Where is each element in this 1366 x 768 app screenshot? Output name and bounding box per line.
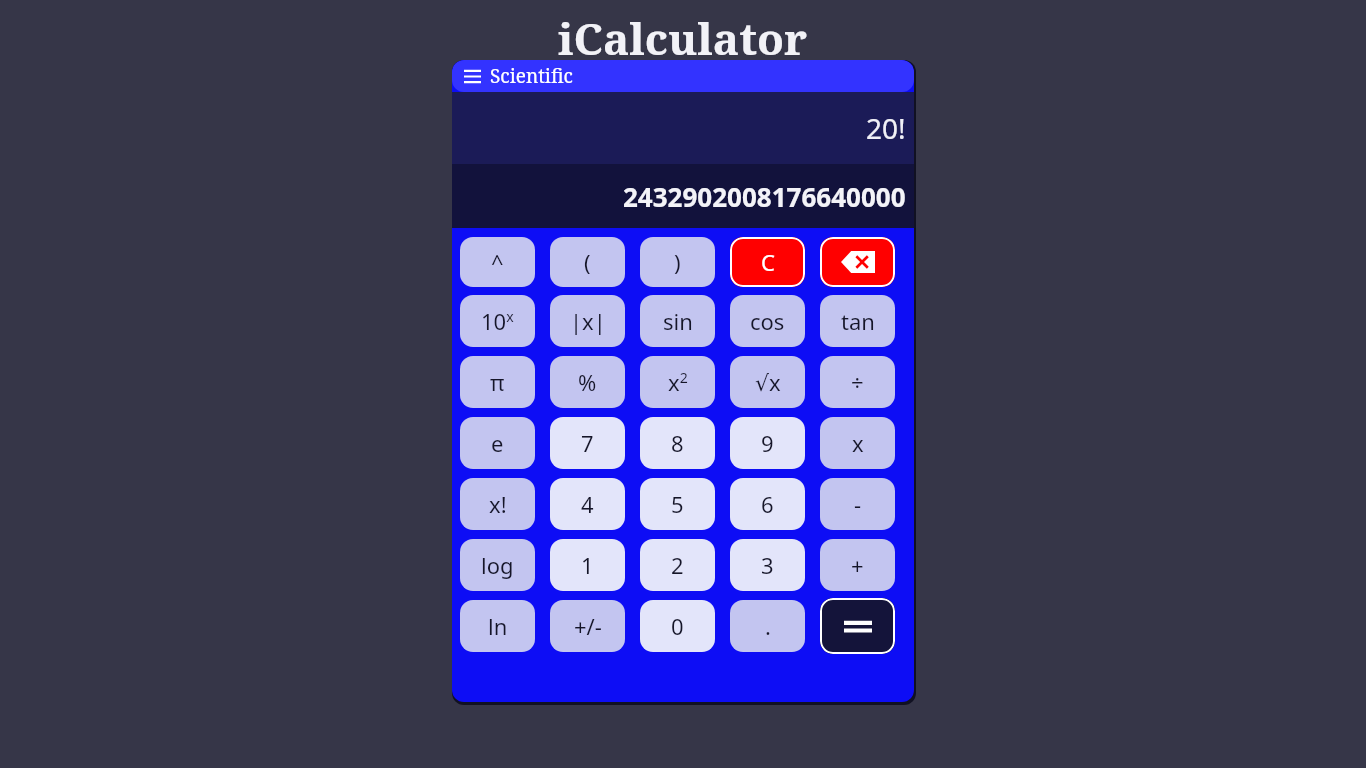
staticText: x2 bbox=[668, 367, 688, 397]
staticText: 2 bbox=[671, 550, 684, 580]
button[interactable]: cos bbox=[730, 295, 805, 347]
button[interactable]: x bbox=[820, 417, 895, 469]
staticText: ÷ bbox=[851, 367, 864, 397]
button[interactable]: 3 bbox=[730, 539, 805, 591]
button[interactable]: ln bbox=[460, 600, 535, 652]
button[interactable]: 5 bbox=[640, 478, 715, 530]
button[interactable]: 0 bbox=[640, 600, 715, 652]
staticText: π bbox=[490, 367, 505, 397]
button[interactable]: ) bbox=[640, 237, 715, 287]
button[interactable]: . bbox=[730, 600, 805, 652]
button[interactable]: Backspace bbox=[820, 237, 895, 287]
staticText: 4 bbox=[581, 489, 594, 519]
staticText: log bbox=[481, 550, 514, 580]
button[interactable]: sin bbox=[640, 295, 715, 347]
staticText: . bbox=[765, 611, 771, 641]
button[interactable]: 9 bbox=[730, 417, 805, 469]
button[interactable]: 7 bbox=[550, 417, 625, 469]
button[interactable]: % bbox=[550, 356, 625, 408]
staticText: 10x bbox=[481, 306, 514, 336]
staticText: + bbox=[851, 550, 864, 580]
staticText: iCalculator bbox=[558, 8, 808, 68]
staticText: 9 bbox=[761, 428, 774, 458]
button[interactable]: 4 bbox=[550, 478, 625, 530]
staticText: 8 bbox=[671, 428, 684, 458]
staticText: 1 bbox=[581, 550, 594, 580]
staticText: sin bbox=[663, 306, 693, 336]
staticText: Scientific bbox=[490, 63, 573, 89]
button[interactable] bbox=[820, 598, 895, 654]
button[interactable]: 10x bbox=[460, 295, 535, 347]
staticText: √x bbox=[755, 367, 781, 397]
button[interactable]: ( bbox=[550, 237, 625, 287]
staticText: |x| bbox=[570, 306, 606, 336]
staticText: ) bbox=[674, 247, 681, 277]
button[interactable]: tan bbox=[820, 295, 895, 347]
staticText: cos bbox=[750, 306, 785, 336]
staticText: e bbox=[491, 428, 504, 458]
button[interactable]: 8 bbox=[640, 417, 715, 469]
button[interactable]: x2 bbox=[640, 356, 715, 408]
button[interactable]: π bbox=[460, 356, 535, 408]
staticText: +/- bbox=[574, 611, 602, 641]
staticText: - bbox=[854, 489, 862, 519]
button[interactable]: log bbox=[460, 539, 535, 591]
button[interactable]: 2 bbox=[640, 539, 715, 591]
staticText: 7 bbox=[581, 428, 594, 458]
staticText: 2432902008176640000 bbox=[623, 179, 906, 214]
staticText: 0 bbox=[671, 611, 684, 641]
staticText: x! bbox=[489, 489, 507, 519]
button[interactable]: C bbox=[730, 237, 805, 287]
button[interactable]: ÷ bbox=[820, 356, 895, 408]
button[interactable]: +/- bbox=[550, 600, 625, 652]
staticText: 6 bbox=[761, 489, 774, 519]
staticText: % bbox=[578, 367, 597, 397]
staticText: ^ bbox=[491, 247, 504, 277]
button[interactable]: e bbox=[460, 417, 535, 469]
button[interactable]: ^ bbox=[460, 237, 535, 287]
staticText: ( bbox=[584, 247, 591, 277]
button[interactable]: Scientific bbox=[452, 60, 914, 92]
button[interactable]: 1 bbox=[550, 539, 625, 591]
staticText: tan bbox=[841, 306, 875, 336]
staticText: 20! bbox=[866, 109, 906, 147]
staticText: 3 bbox=[761, 550, 774, 580]
button[interactable]: √x bbox=[730, 356, 805, 408]
staticText: C bbox=[761, 247, 775, 277]
button[interactable]: - bbox=[820, 478, 895, 530]
button[interactable]: |x| bbox=[550, 295, 625, 347]
staticText: 5 bbox=[671, 489, 684, 519]
staticText: x bbox=[852, 428, 864, 458]
staticText: ln bbox=[488, 611, 508, 641]
button[interactable]: x! bbox=[460, 478, 535, 530]
button[interactable]: + bbox=[820, 539, 895, 591]
button[interactable]: 6 bbox=[730, 478, 805, 530]
